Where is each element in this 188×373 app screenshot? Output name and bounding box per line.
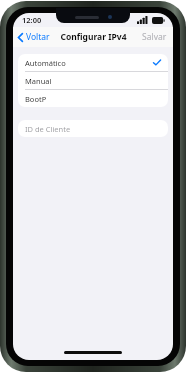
button[interactable]: ID de Cliente bbox=[18, 120, 168, 137]
button[interactable]: BootP bbox=[18, 90, 168, 107]
staticText: 12:00 bbox=[22, 15, 42, 25]
staticText: Automático bbox=[25, 58, 66, 68]
button[interactable]: Voltar bbox=[13, 28, 56, 46]
staticText: Voltar bbox=[26, 31, 50, 43]
button[interactable]: Salvar bbox=[136, 28, 173, 46]
staticText: ID de Cliente bbox=[25, 124, 71, 134]
staticText: Configurar IPv4 bbox=[60, 31, 127, 43]
staticText: Manual bbox=[25, 76, 52, 86]
other: Home bbox=[64, 351, 122, 354]
staticText: BootP bbox=[25, 94, 47, 104]
button[interactable]: Automático bbox=[18, 54, 168, 72]
button[interactable]: Manual bbox=[18, 72, 168, 90]
